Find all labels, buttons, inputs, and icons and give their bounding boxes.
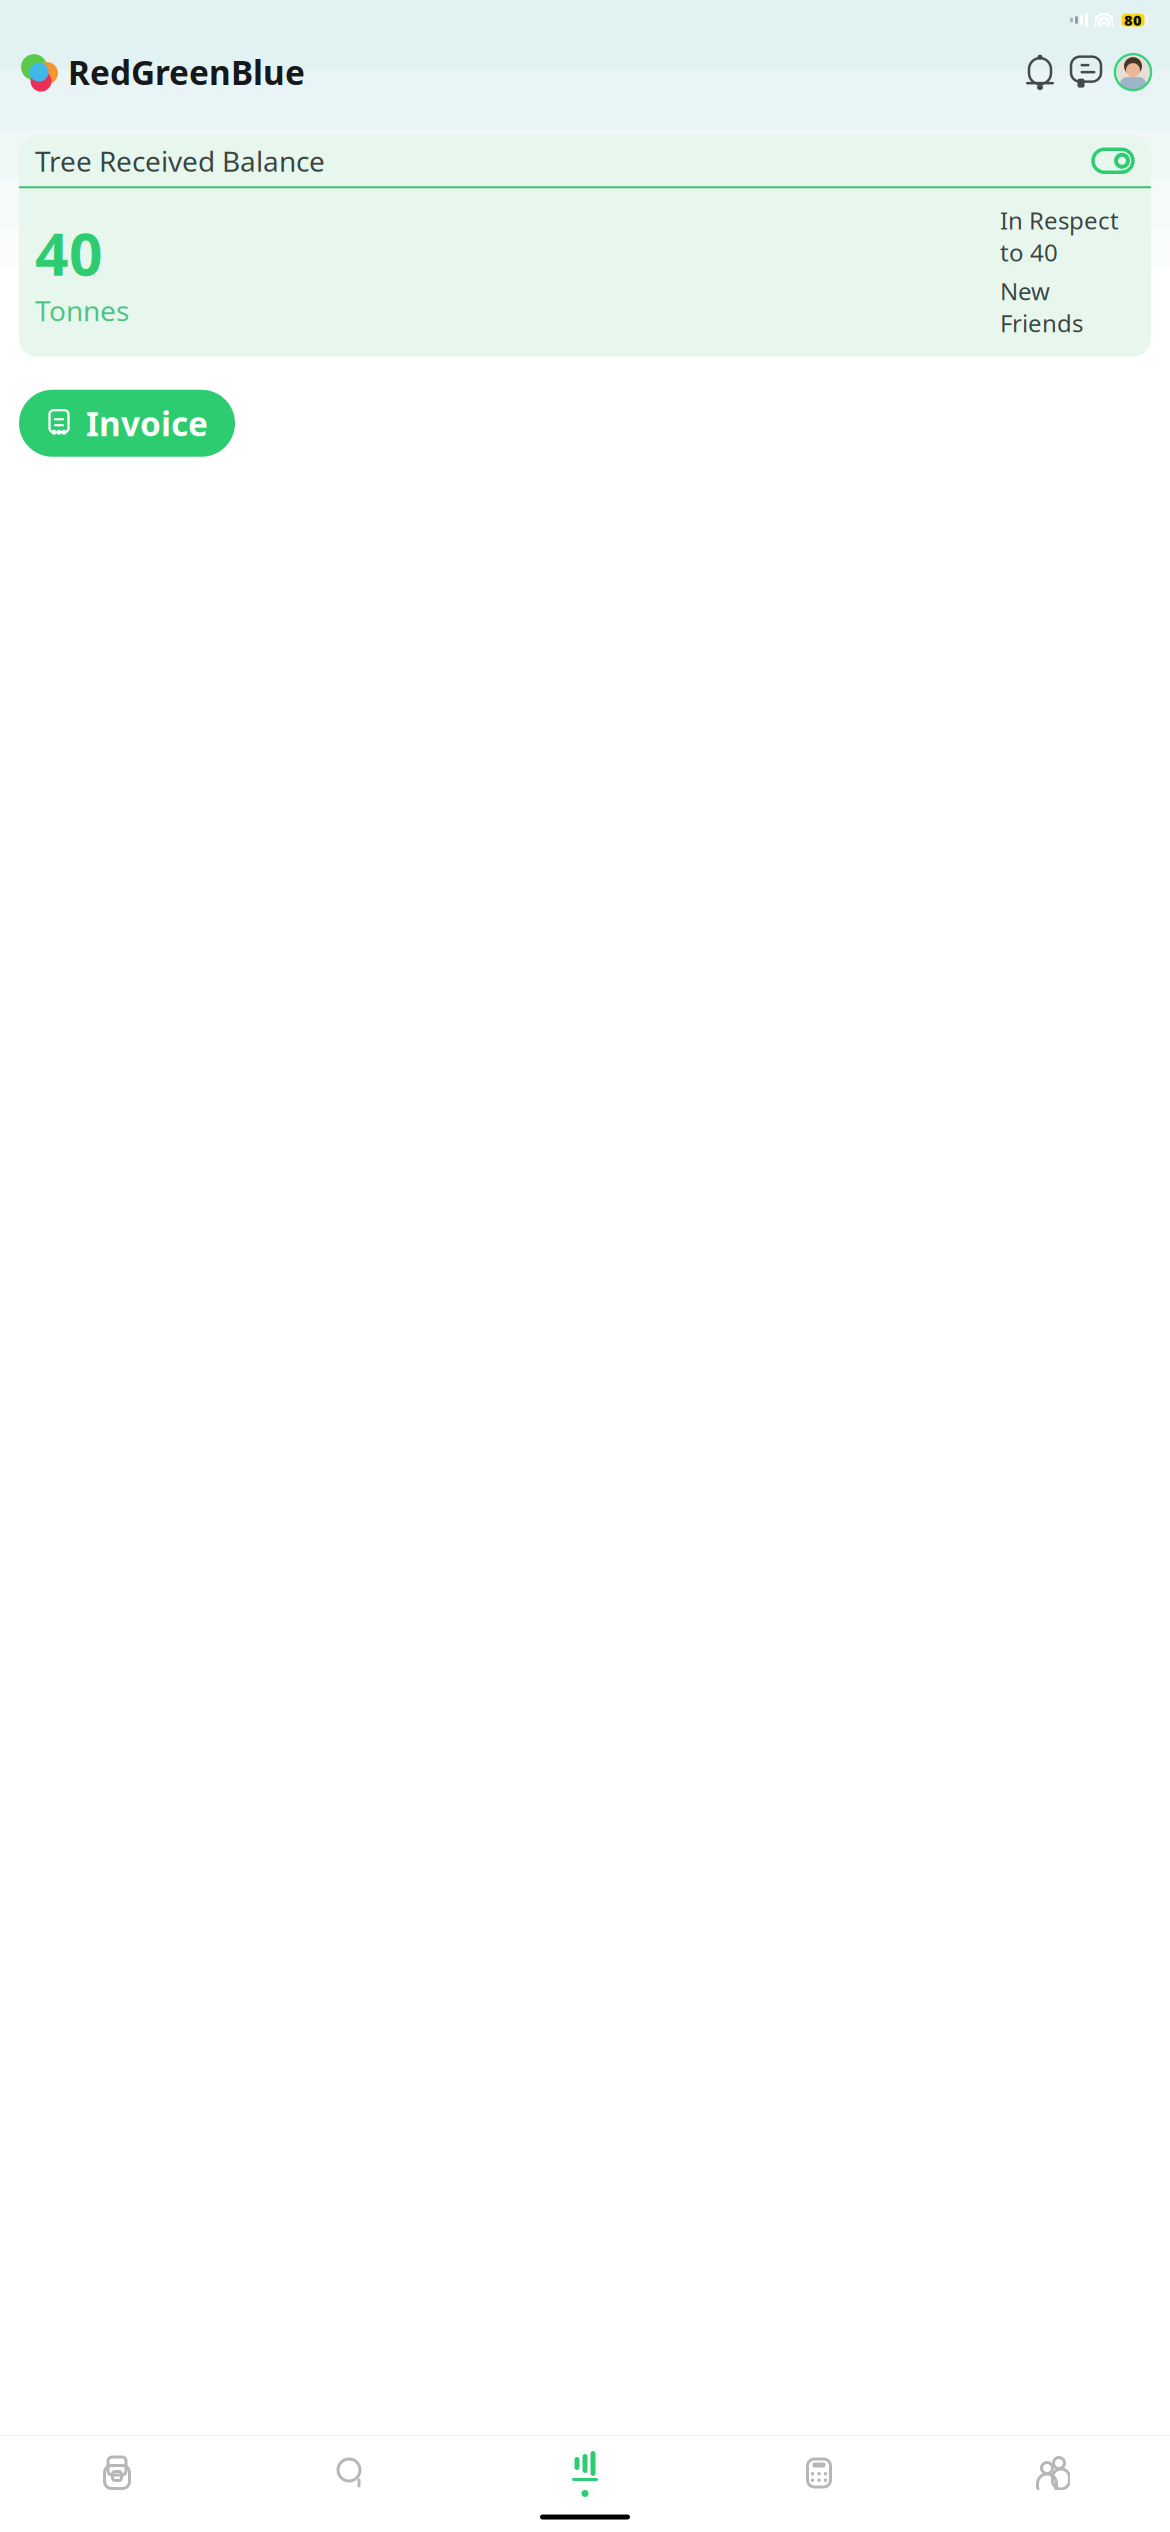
- button[interactable]: Profile: [1115, 54, 1151, 90]
- staticText: 80: [1124, 10, 1142, 30]
- button[interactable]: Toggle balance: [1091, 148, 1135, 174]
- staticText: Invoice: [86, 401, 208, 445]
- button[interactable]: RedGreenBlue: [19, 50, 305, 94]
- button[interactable]: Contacts: [936, 2444, 1170, 2502]
- button[interactable]: Calculator: [702, 2444, 936, 2502]
- button[interactable]: Search: [234, 2444, 468, 2502]
- button[interactable]: Messages: [1069, 55, 1103, 89]
- staticText: RedGreenBlue: [68, 50, 305, 94]
- staticText: Tree Received Balance: [35, 142, 325, 179]
- button[interactable]: Home: [0, 2444, 234, 2502]
- staticText: In Respect to 40: [1000, 204, 1119, 268]
- staticText: 40: [35, 214, 103, 292]
- button[interactable]: Invoice: [19, 390, 235, 457]
- staticText: New Friends: [1000, 275, 1083, 339]
- button[interactable]: Statistics: [468, 2444, 702, 2502]
- button[interactable]: Notifications: [1023, 55, 1057, 89]
- staticText: Tonnes: [35, 292, 129, 329]
